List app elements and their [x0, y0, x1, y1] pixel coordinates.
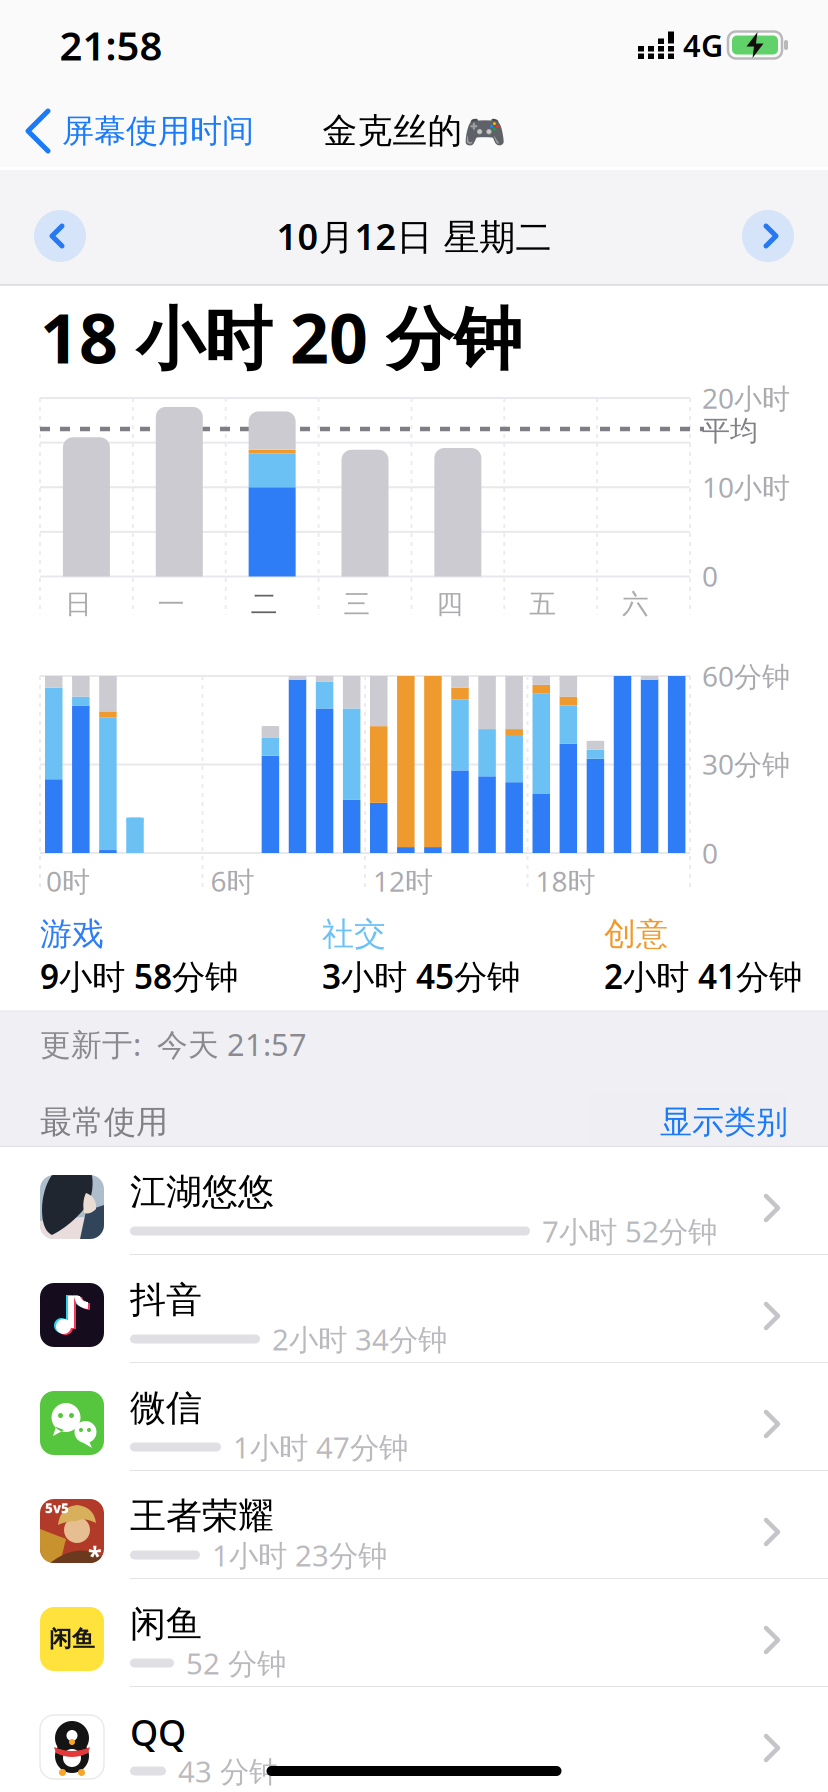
staticText: 王者荣耀 [130, 1494, 274, 1538]
staticText: 日 [65, 588, 92, 620]
staticText: 闲鱼 [49, 1625, 95, 1653]
staticText: 六 [622, 588, 649, 620]
staticText: 闲鱼 [130, 1602, 202, 1646]
button[interactable]: 显示类别 [588, 1092, 788, 1152]
staticText: 显示类别 [660, 1102, 788, 1142]
staticText: 7小时 52分钟 [542, 1211, 717, 1250]
staticText: 创意 [604, 914, 668, 954]
staticText: QQ [130, 1708, 186, 1756]
staticText: 金克丝的🎮 [322, 110, 505, 152]
button[interactable]: 后一天 [742, 210, 794, 262]
staticText: 18时 [535, 862, 595, 900]
staticText: 4G [683, 25, 723, 65]
button[interactable]: 5v5 [0, 1471, 828, 1579]
staticText: 43 分钟 [178, 1751, 278, 1790]
staticText: 三 [343, 588, 370, 620]
staticText: 6时 [210, 862, 254, 900]
staticText: 1小时 47分钟 [233, 1427, 408, 1466]
staticText: 五 [529, 588, 556, 620]
staticText: * [88, 1538, 102, 1572]
staticText: 20小时 [702, 379, 790, 417]
staticText: 2小时 34分钟 [272, 1319, 447, 1358]
button[interactable]: 微信 [0, 1363, 828, 1471]
staticText: 10小时 [702, 468, 790, 506]
staticText: 一 [158, 588, 185, 620]
staticText: 30分钟 [702, 745, 790, 783]
staticText: 52 分钟 [186, 1643, 286, 1682]
staticText: 0 [702, 557, 718, 595]
staticText: 平均 [702, 414, 758, 448]
button[interactable]: QQ [0, 1687, 828, 1792]
button[interactable]: 抖音 [0, 1255, 828, 1363]
staticText: 屏幕使用时间 [62, 111, 254, 151]
button[interactable]: 屏幕使用时间 [0, 88, 290, 166]
staticText: 0时 [46, 862, 90, 900]
staticText: 微信 [130, 1386, 202, 1430]
staticText: 5v5 [45, 1499, 69, 1517]
staticText: 更新于: 今天 21:57 [40, 1024, 307, 1064]
button[interactable]: 闲鱼 [0, 1579, 828, 1687]
staticText: 10月12日 星期二 [276, 212, 551, 260]
staticText: 2小时 41分钟 [604, 954, 802, 998]
button[interactable]: 前一天 [34, 210, 86, 262]
staticText: 游戏 [40, 914, 104, 954]
staticText: 18 小时 20 分钟 [40, 292, 522, 382]
button[interactable]: 江湖悠悠 [0, 1147, 828, 1255]
staticText: 社交 [322, 914, 386, 954]
staticText: 二 [251, 588, 278, 620]
staticText: 12时 [373, 862, 433, 900]
staticText: 0 [702, 834, 718, 872]
staticText: 抖音 [130, 1278, 202, 1322]
staticText: 最常使用 [40, 1102, 168, 1142]
staticText: 江湖悠悠 [130, 1170, 274, 1214]
staticText: 60分钟 [702, 657, 790, 695]
staticText: 四 [436, 588, 463, 620]
staticText: 3小时 45分钟 [322, 954, 520, 998]
staticText: 1小时 23分钟 [212, 1535, 387, 1574]
staticText: 21:58 [59, 18, 162, 71]
staticText: 9小时 58分钟 [40, 954, 238, 998]
